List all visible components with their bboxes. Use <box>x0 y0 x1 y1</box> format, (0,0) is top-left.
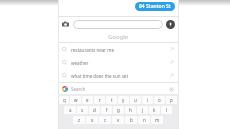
staticText: g <box>117 107 120 113</box>
button[interactable]: k <box>149 106 160 114</box>
button[interactable]: p <box>166 96 177 104</box>
staticText: m <box>155 117 160 123</box>
staticText: weather <box>71 60 89 66</box>
button[interactable]: c <box>99 116 111 124</box>
button[interactable]: what time does the sun set <box>58 69 178 82</box>
button[interactable]: l <box>161 106 172 114</box>
staticText: Google <box>108 33 129 41</box>
staticText: q <box>63 97 66 103</box>
staticText: c <box>104 117 107 123</box>
button[interactable]: 84 Stanton St <box>135 2 175 11</box>
staticText: j <box>142 107 144 113</box>
button[interactable]: u <box>130 96 141 104</box>
staticText: k <box>153 107 156 113</box>
button[interactable]: i <box>142 96 153 104</box>
staticText: w <box>74 97 78 103</box>
button[interactable]: t <box>106 96 117 104</box>
staticText: y <box>122 97 125 103</box>
button[interactable]: j <box>137 106 148 114</box>
button[interactable]: v <box>112 116 124 124</box>
staticText: x <box>91 117 94 123</box>
staticText: restaurants near me <box>71 47 115 53</box>
staticText: what time does the sun set <box>71 73 129 79</box>
button[interactable]: a <box>64 106 76 114</box>
button[interactable] <box>73 20 163 29</box>
button[interactable]: g <box>113 106 124 114</box>
staticText: l <box>166 107 168 113</box>
button[interactable]: f <box>101 106 112 114</box>
button[interactable]: b <box>125 116 137 124</box>
staticText: v <box>117 117 120 123</box>
button[interactable]: x <box>86 116 98 124</box>
button[interactable]: r <box>94 96 105 104</box>
staticText: z <box>78 117 81 123</box>
staticText: s <box>81 107 84 113</box>
button[interactable]: y <box>118 96 129 104</box>
button[interactable]: z <box>73 116 85 124</box>
button[interactable]: d <box>89 106 100 114</box>
button[interactable]: s <box>77 106 88 114</box>
staticText: r <box>99 97 101 103</box>
staticText: f <box>106 107 108 113</box>
button[interactable]: m <box>151 116 163 124</box>
staticText: o <box>158 97 161 103</box>
button[interactable]: Voice search <box>166 20 175 29</box>
staticText: n <box>143 117 146 123</box>
staticText: Search <box>71 86 86 92</box>
button[interactable]: Camera search <box>61 20 70 29</box>
button[interactable]: w <box>70 96 81 104</box>
staticText: b <box>130 117 133 123</box>
button[interactable]: o <box>154 96 165 104</box>
button[interactable]: Search <box>58 83 178 94</box>
button[interactable]: q <box>59 96 69 104</box>
staticText: a <box>69 107 72 113</box>
staticText: e <box>86 97 89 103</box>
staticText: t <box>111 97 113 103</box>
button[interactable]: n <box>138 116 150 124</box>
button[interactable]: restaurants near me <box>58 43 178 56</box>
staticText: i <box>147 97 149 103</box>
button[interactable]: h <box>125 106 136 114</box>
button[interactable]: weather <box>58 56 178 69</box>
staticText: u <box>134 97 137 103</box>
staticText: p <box>170 97 173 103</box>
button[interactable]: Settings <box>168 86 174 92</box>
staticText: h <box>129 107 132 113</box>
staticText: d <box>93 107 96 113</box>
staticText: 84 Stanton St <box>139 3 171 10</box>
button[interactable]: e <box>82 96 93 104</box>
